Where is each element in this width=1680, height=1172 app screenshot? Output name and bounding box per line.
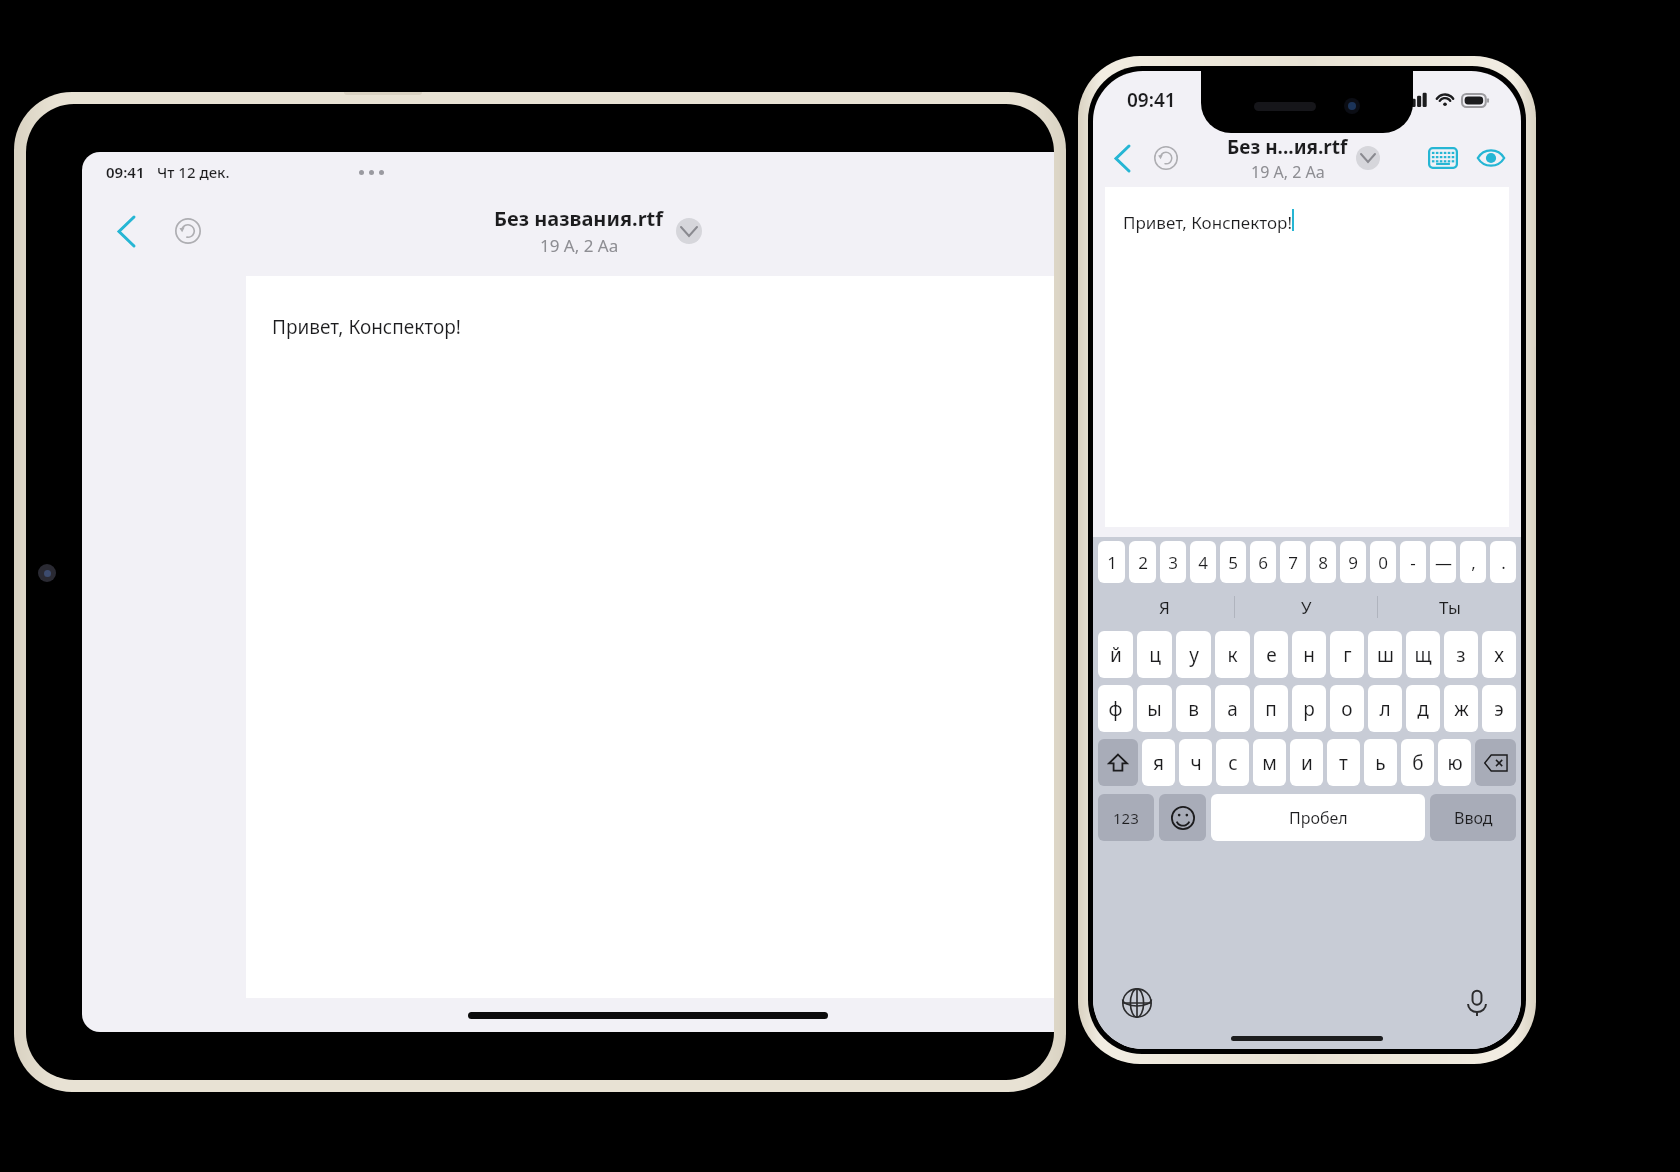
staticText: 123 <box>1113 808 1139 828</box>
button[interactable]: с <box>1216 739 1249 786</box>
button[interactable]: т <box>1327 739 1360 786</box>
button[interactable]: г <box>1330 631 1364 678</box>
staticText: , <box>1471 551 1476 574</box>
staticText: й <box>1110 642 1122 668</box>
staticText: э <box>1494 696 1504 722</box>
button[interactable]: . <box>1490 541 1516 583</box>
button[interactable]: а <box>1215 685 1250 732</box>
staticText: с <box>1228 750 1238 776</box>
button[interactable]: 5 <box>1220 541 1246 583</box>
button[interactable]: з <box>1444 631 1478 678</box>
button[interactable]: Без н...ия.rtf <box>1227 134 1348 183</box>
staticText: Без названия.rtf <box>494 205 664 232</box>
button[interactable]: ч <box>1179 739 1212 786</box>
staticText: 7 <box>1288 551 1298 574</box>
button[interactable]: й <box>1098 631 1133 678</box>
staticText: Без н...ия.rtf <box>1227 134 1348 160</box>
staticText: 19 A, 2 Aa <box>540 234 619 257</box>
button[interactable]: ж <box>1444 685 1478 732</box>
button[interactable]: 9 <box>1340 541 1366 583</box>
staticText: л <box>1379 696 1391 722</box>
button[interactable]: Back <box>1103 139 1141 177</box>
button[interactable]: ц <box>1137 631 1172 678</box>
button[interactable]: Emoji <box>1159 794 1206 841</box>
button[interactable]: Change keyboard <box>1117 983 1157 1023</box>
button[interactable]: ь <box>1364 739 1397 786</box>
button[interactable]: — <box>1430 541 1456 583</box>
button[interactable]: Без названия.rtf <box>494 205 664 257</box>
staticText: к <box>1227 642 1238 668</box>
staticText: в <box>1188 696 1199 722</box>
staticText: б <box>1412 750 1424 776</box>
button[interactable]: р <box>1292 685 1326 732</box>
staticText: ю <box>1447 750 1463 776</box>
button[interactable]: 4 <box>1190 541 1216 583</box>
staticText: м <box>1262 750 1277 776</box>
staticText: ф <box>1108 696 1123 722</box>
button[interactable]: в <box>1176 685 1211 732</box>
staticText: щ <box>1414 642 1432 668</box>
button[interactable]: Я <box>1093 583 1235 631</box>
button[interactable]: 7 <box>1280 541 1306 583</box>
staticText: 3 <box>1168 551 1178 574</box>
button[interactable]: 8 <box>1310 541 1336 583</box>
button[interactable]: Undo <box>166 209 210 253</box>
button[interactable]: б <box>1401 739 1434 786</box>
button[interactable]: щ <box>1406 631 1440 678</box>
button[interactable]: Dictation <box>1457 983 1497 1023</box>
button[interactable]: More options <box>1356 146 1380 170</box>
staticText: п <box>1265 696 1277 722</box>
button[interactable]: ш <box>1368 631 1402 678</box>
button[interactable]: у <box>1176 631 1211 678</box>
button[interactable]: Shift <box>1098 739 1138 786</box>
button[interactable]: д <box>1406 685 1440 732</box>
button[interactable]: 123 <box>1098 794 1154 841</box>
button[interactable]: More options <box>676 218 702 244</box>
button[interactable]: я <box>1142 739 1175 786</box>
button[interactable]: л <box>1368 685 1402 732</box>
button[interactable]: ю <box>1438 739 1471 786</box>
button[interactable]: Ввод <box>1430 794 1516 841</box>
staticText: . <box>1501 551 1506 574</box>
staticText: Привет, Конспектор! <box>1123 211 1292 234</box>
staticText: У <box>1301 596 1312 619</box>
button[interactable]: Back <box>104 209 148 253</box>
button[interactable]: э <box>1482 685 1516 732</box>
button[interactable]: 1 <box>1098 541 1125 583</box>
staticText: 09:41 <box>106 162 145 182</box>
button[interactable]: е <box>1254 631 1288 678</box>
button[interactable]: У <box>1235 583 1378 631</box>
button[interactable]: н <box>1292 631 1326 678</box>
staticText: у <box>1189 642 1199 668</box>
button[interactable]: Undo <box>1147 139 1185 177</box>
staticText: е <box>1266 642 1277 668</box>
button[interactable]: Keyboard <box>1423 138 1463 178</box>
button[interactable]: о <box>1330 685 1364 732</box>
staticText: 8 <box>1318 551 1328 574</box>
button[interactable]: х <box>1482 631 1516 678</box>
button[interactable]: п <box>1254 685 1288 732</box>
staticText: 2 <box>1138 551 1148 574</box>
button[interactable]: Ты <box>1378 583 1521 631</box>
staticText: ы <box>1147 696 1162 722</box>
button[interactable]: 3 <box>1160 541 1186 583</box>
staticText: Ввод <box>1454 807 1493 829</box>
button[interactable]: Пробел <box>1211 794 1425 841</box>
button[interactable]: 6 <box>1250 541 1276 583</box>
button[interactable]: Backspace <box>1475 739 1516 786</box>
staticText: ж <box>1454 696 1469 722</box>
button[interactable]: Preview <box>1471 138 1511 178</box>
button[interactable]: - <box>1400 541 1426 583</box>
staticText: Чт 12 дек. <box>157 162 230 182</box>
button[interactable]: м <box>1253 739 1286 786</box>
button[interactable]: ф <box>1098 685 1133 732</box>
button[interactable]: 2 <box>1129 541 1156 583</box>
button[interactable]: к <box>1215 631 1250 678</box>
button[interactable]: , <box>1460 541 1486 583</box>
staticText: н <box>1303 642 1315 668</box>
button[interactable]: и <box>1290 739 1323 786</box>
staticText: 6 <box>1258 551 1268 574</box>
button[interactable]: Multitasking <box>351 162 392 183</box>
button[interactable]: ы <box>1137 685 1172 732</box>
button[interactable]: 0 <box>1370 541 1396 583</box>
